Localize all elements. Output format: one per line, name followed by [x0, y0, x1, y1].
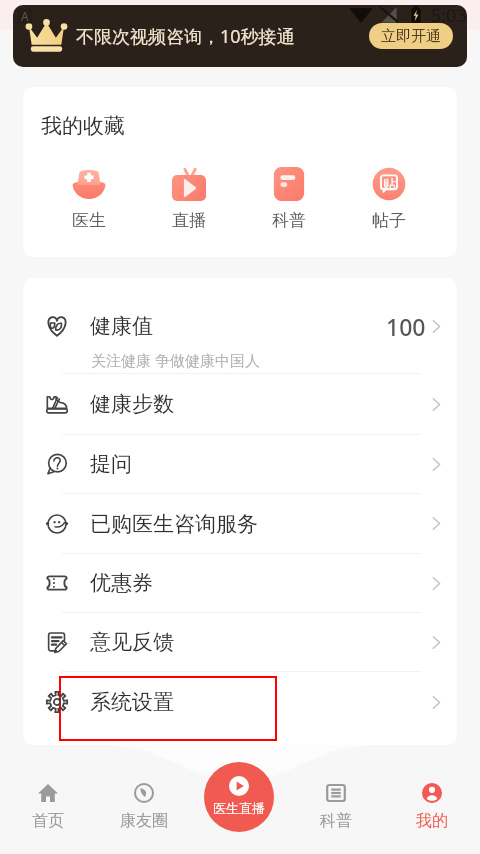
staticText: 意见反馈 [90, 629, 174, 655]
button[interactable]: 意见反馈 [23, 613, 457, 671]
staticText: 立即开通 [381, 27, 441, 46]
staticText: 康友圈 [120, 811, 168, 831]
button[interactable]: 首页 [0, 783, 96, 831]
button[interactable]: 已购医生咨询服务 [23, 494, 457, 553]
button[interactable]: 不限次视频咨询，10秒接通 [13, 5, 467, 67]
button[interactable]: 健康值 [23, 278, 457, 373]
staticText: 优惠券 [90, 570, 153, 596]
staticText: 健康值 [90, 313, 153, 339]
button[interactable]: 直播 [139, 167, 239, 231]
button[interactable]: 贴 [339, 167, 439, 231]
button[interactable]: 立即开通 [369, 23, 453, 49]
button[interactable]: 提问 [23, 435, 457, 493]
button[interactable]: 医生直播 [204, 762, 274, 832]
staticText: 已购医生咨询服务 [90, 511, 258, 537]
button[interactable]: 优惠券 [23, 554, 457, 612]
staticText: 关注健康 争做健康中国人 [91, 350, 260, 370]
staticText: 系统设置 [90, 689, 174, 715]
button[interactable]: 康友圈 [96, 783, 192, 831]
staticText: 我的收藏 [41, 113, 125, 139]
staticText: 健康步数 [90, 391, 174, 417]
button[interactable]: 健康步数 [23, 374, 457, 434]
staticText: 医生直播 [213, 800, 265, 816]
staticText: 不限次视频咨询，10秒接通 [76, 24, 295, 49]
staticText: 科普 [272, 210, 306, 231]
button[interactable]: 系统设置 [23, 672, 457, 745]
staticText: 医生 [72, 210, 106, 231]
button[interactable]: 我的 [384, 783, 480, 831]
staticText: 帖子 [372, 210, 406, 231]
staticText: 提问 [90, 451, 132, 477]
button[interactable]: 医生 [39, 167, 139, 231]
staticText: 科普 [320, 811, 352, 831]
staticText: 我的 [416, 811, 448, 831]
staticText: 贴 [383, 176, 396, 191]
button[interactable]: 科普 [288, 783, 384, 831]
staticText: 100 [386, 311, 426, 342]
staticText: A [21, 8, 29, 24]
staticText: 首页 [32, 811, 64, 831]
staticText: 5:03 [431, 3, 467, 28]
staticText: 直播 [172, 210, 206, 231]
button[interactable]: 科普 [239, 167, 339, 231]
